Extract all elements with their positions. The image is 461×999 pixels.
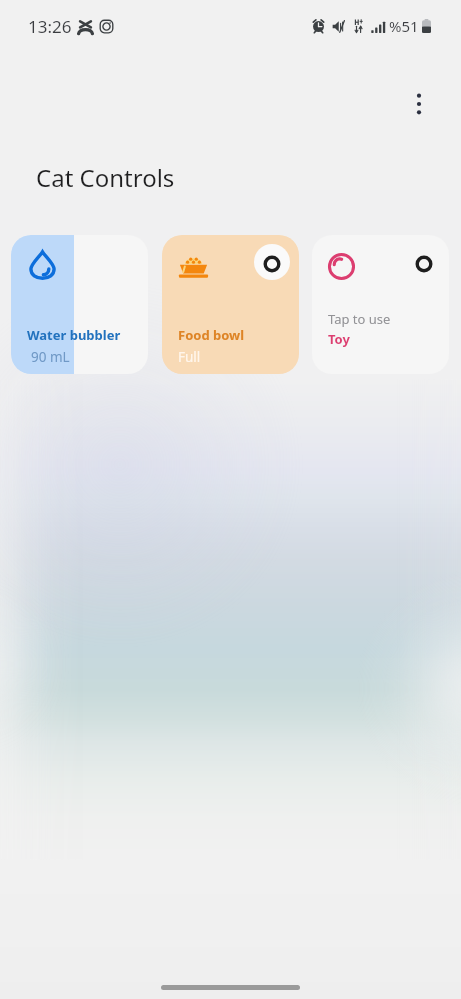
button[interactable]: Toggle toy [312, 235, 449, 374]
button[interactable]: Toggle food bowl [254, 244, 290, 280]
button[interactable]: Water bubbler [11, 235, 148, 374]
button[interactable]: More options [404, 89, 434, 119]
staticText: Cat Controls [36, 161, 175, 194]
staticText: 13:26 [28, 15, 72, 38]
staticText: Toy [328, 330, 350, 348]
staticText: Water bubbler [27, 326, 121, 344]
staticText: %51 [389, 16, 419, 36]
staticText: Full [178, 348, 201, 366]
staticText: Food bowl [178, 326, 245, 344]
staticText: 90 mL [31, 348, 70, 366]
button[interactable]: Toggle food bowl [162, 235, 299, 374]
button[interactable]: Toggle toy [406, 244, 442, 280]
staticText: Tap to use [328, 310, 391, 328]
